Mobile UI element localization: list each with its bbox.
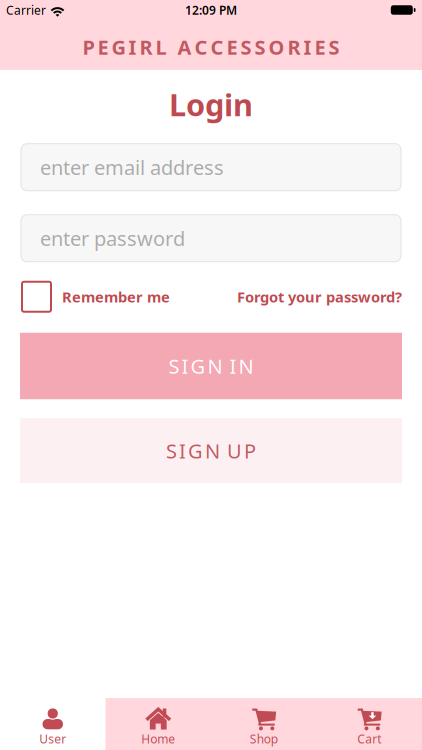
staticText: Shop	[250, 731, 278, 747]
staticText: User	[39, 731, 66, 747]
staticText: enter email address	[40, 154, 224, 180]
button[interactable]: S I G N U P	[20, 418, 402, 483]
staticText: 12:09 PM	[185, 2, 237, 18]
staticText: S I G N I N	[168, 353, 253, 379]
button[interactable]: User	[0, 698, 105, 750]
staticText: Carrier	[6, 2, 46, 18]
staticText: Forgot your password?	[237, 287, 402, 306]
button[interactable]: Home	[105, 698, 211, 750]
button[interactable]: Forgot your password?	[237, 287, 402, 306]
staticText: enter password	[40, 225, 185, 251]
staticText: Login	[169, 84, 253, 125]
staticText: Home	[141, 731, 175, 747]
staticText: S I G N U P	[166, 437, 256, 464]
button[interactable]: enter password	[21, 215, 401, 262]
button[interactable]: Shop	[211, 698, 316, 750]
staticText: Remember me	[62, 287, 170, 306]
button[interactable]: Remember me	[22, 282, 170, 312]
button[interactable]: Cart	[316, 698, 422, 750]
staticText: Cart	[357, 731, 381, 747]
button[interactable]: S I G N I N	[20, 333, 402, 399]
button[interactable]: enter email address	[21, 144, 401, 191]
staticText: P E G I R L A C C E S S O R I E S	[82, 34, 339, 60]
